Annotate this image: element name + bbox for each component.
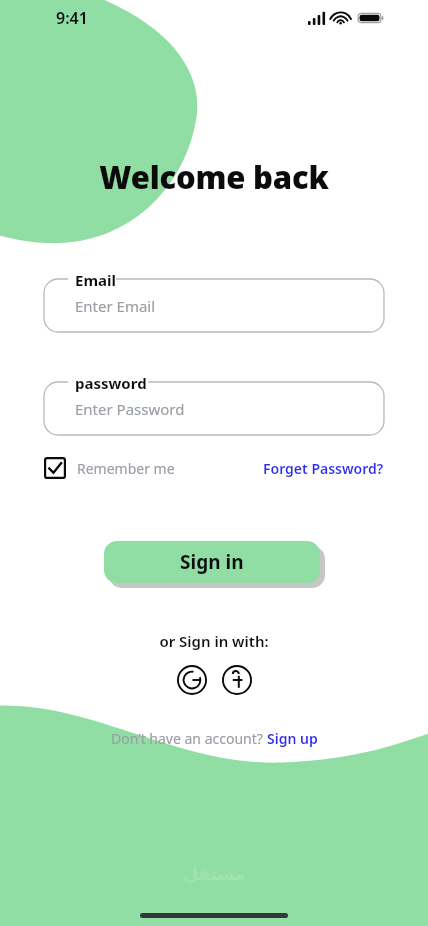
staticText: Welcome back — [0, 156, 428, 198]
staticText: Remember me — [77, 459, 175, 478]
button[interactable]: Email — [44, 270, 384, 332]
staticText: 9:41 — [56, 7, 88, 29]
staticText: مستقل — [183, 864, 246, 884]
button[interactable]: password — [44, 373, 384, 435]
staticText: or Sign in with: — [0, 631, 428, 651]
staticText: Sign in — [180, 549, 244, 575]
button[interactable]: Remember me — [44, 457, 175, 479]
staticText: Don’t have an account? — [111, 729, 267, 748]
staticText: Enter Password — [75, 399, 185, 419]
button[interactable]: Sign in — [104, 541, 320, 583]
staticText: Enter Email — [75, 296, 156, 316]
button[interactable]: Forget Password? — [263, 459, 384, 478]
button[interactable]: Sign up — [267, 729, 318, 748]
staticText: Email — [75, 270, 116, 290]
staticText: password — [75, 373, 147, 393]
button[interactable]: Sign in with Facebook — [222, 665, 252, 695]
button[interactable]: Sign in with Google — [177, 665, 207, 695]
